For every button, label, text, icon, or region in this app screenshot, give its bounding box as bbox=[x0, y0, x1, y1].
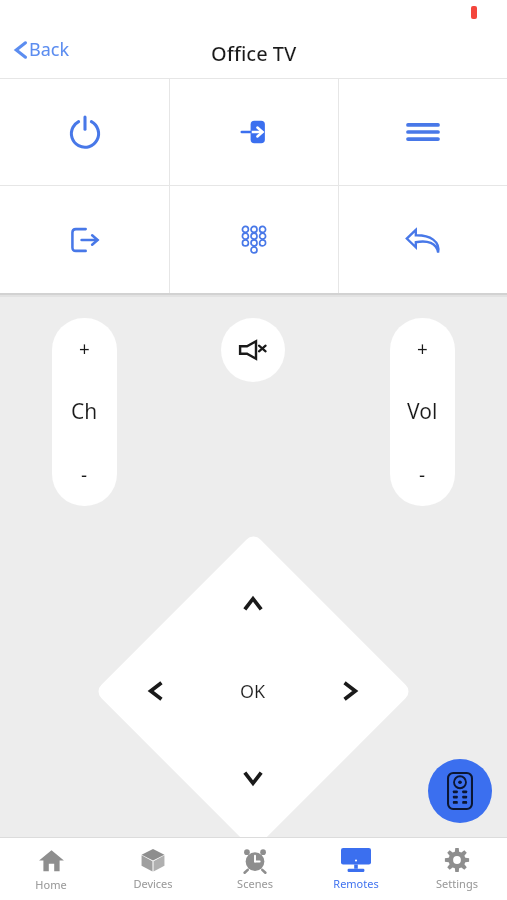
button[interactable]: Menu bbox=[339, 79, 507, 185]
staticText: Ch bbox=[71, 397, 98, 426]
staticText: - bbox=[81, 462, 88, 488]
button[interactable]: Settings bbox=[406, 838, 507, 900]
staticText: + bbox=[79, 336, 90, 362]
staticText: Scenes bbox=[237, 876, 273, 891]
button[interactable]: Home bbox=[0, 838, 102, 900]
staticText: + bbox=[417, 336, 428, 362]
button[interactable]: Remotes bbox=[305, 838, 406, 900]
button[interactable]: Power bbox=[0, 79, 169, 185]
button[interactable]: Exit bbox=[0, 186, 169, 293]
staticText: Office TV bbox=[211, 40, 297, 67]
button[interactable]: Down bbox=[231, 756, 275, 800]
staticText: Vol bbox=[407, 397, 438, 426]
staticText: Back bbox=[29, 37, 70, 62]
button[interactable]: Scenes bbox=[204, 838, 305, 900]
button[interactable]: Right bbox=[328, 669, 372, 713]
button[interactable]: Remote bbox=[428, 759, 492, 823]
button[interactable]: Devices bbox=[102, 838, 204, 900]
button[interactable]: Mute bbox=[221, 318, 285, 382]
staticText: OK bbox=[240, 679, 266, 704]
button[interactable]: Input bbox=[170, 79, 338, 185]
button[interactable]: + bbox=[390, 318, 455, 506]
button[interactable]: Left bbox=[134, 669, 178, 713]
staticText: Remotes bbox=[333, 876, 379, 891]
button[interactable]: Keypad bbox=[170, 186, 338, 293]
button[interactable]: Return bbox=[339, 186, 507, 293]
staticText: - bbox=[419, 462, 426, 488]
button[interactable]: Back bbox=[10, 33, 74, 66]
button[interactable]: + bbox=[52, 318, 117, 506]
button[interactable]: Direction pad bbox=[94, 532, 413, 851]
button[interactable]: Up bbox=[231, 582, 275, 626]
staticText: Devices bbox=[133, 876, 173, 891]
staticText: Home bbox=[35, 877, 67, 892]
staticText: Settings bbox=[436, 876, 478, 891]
